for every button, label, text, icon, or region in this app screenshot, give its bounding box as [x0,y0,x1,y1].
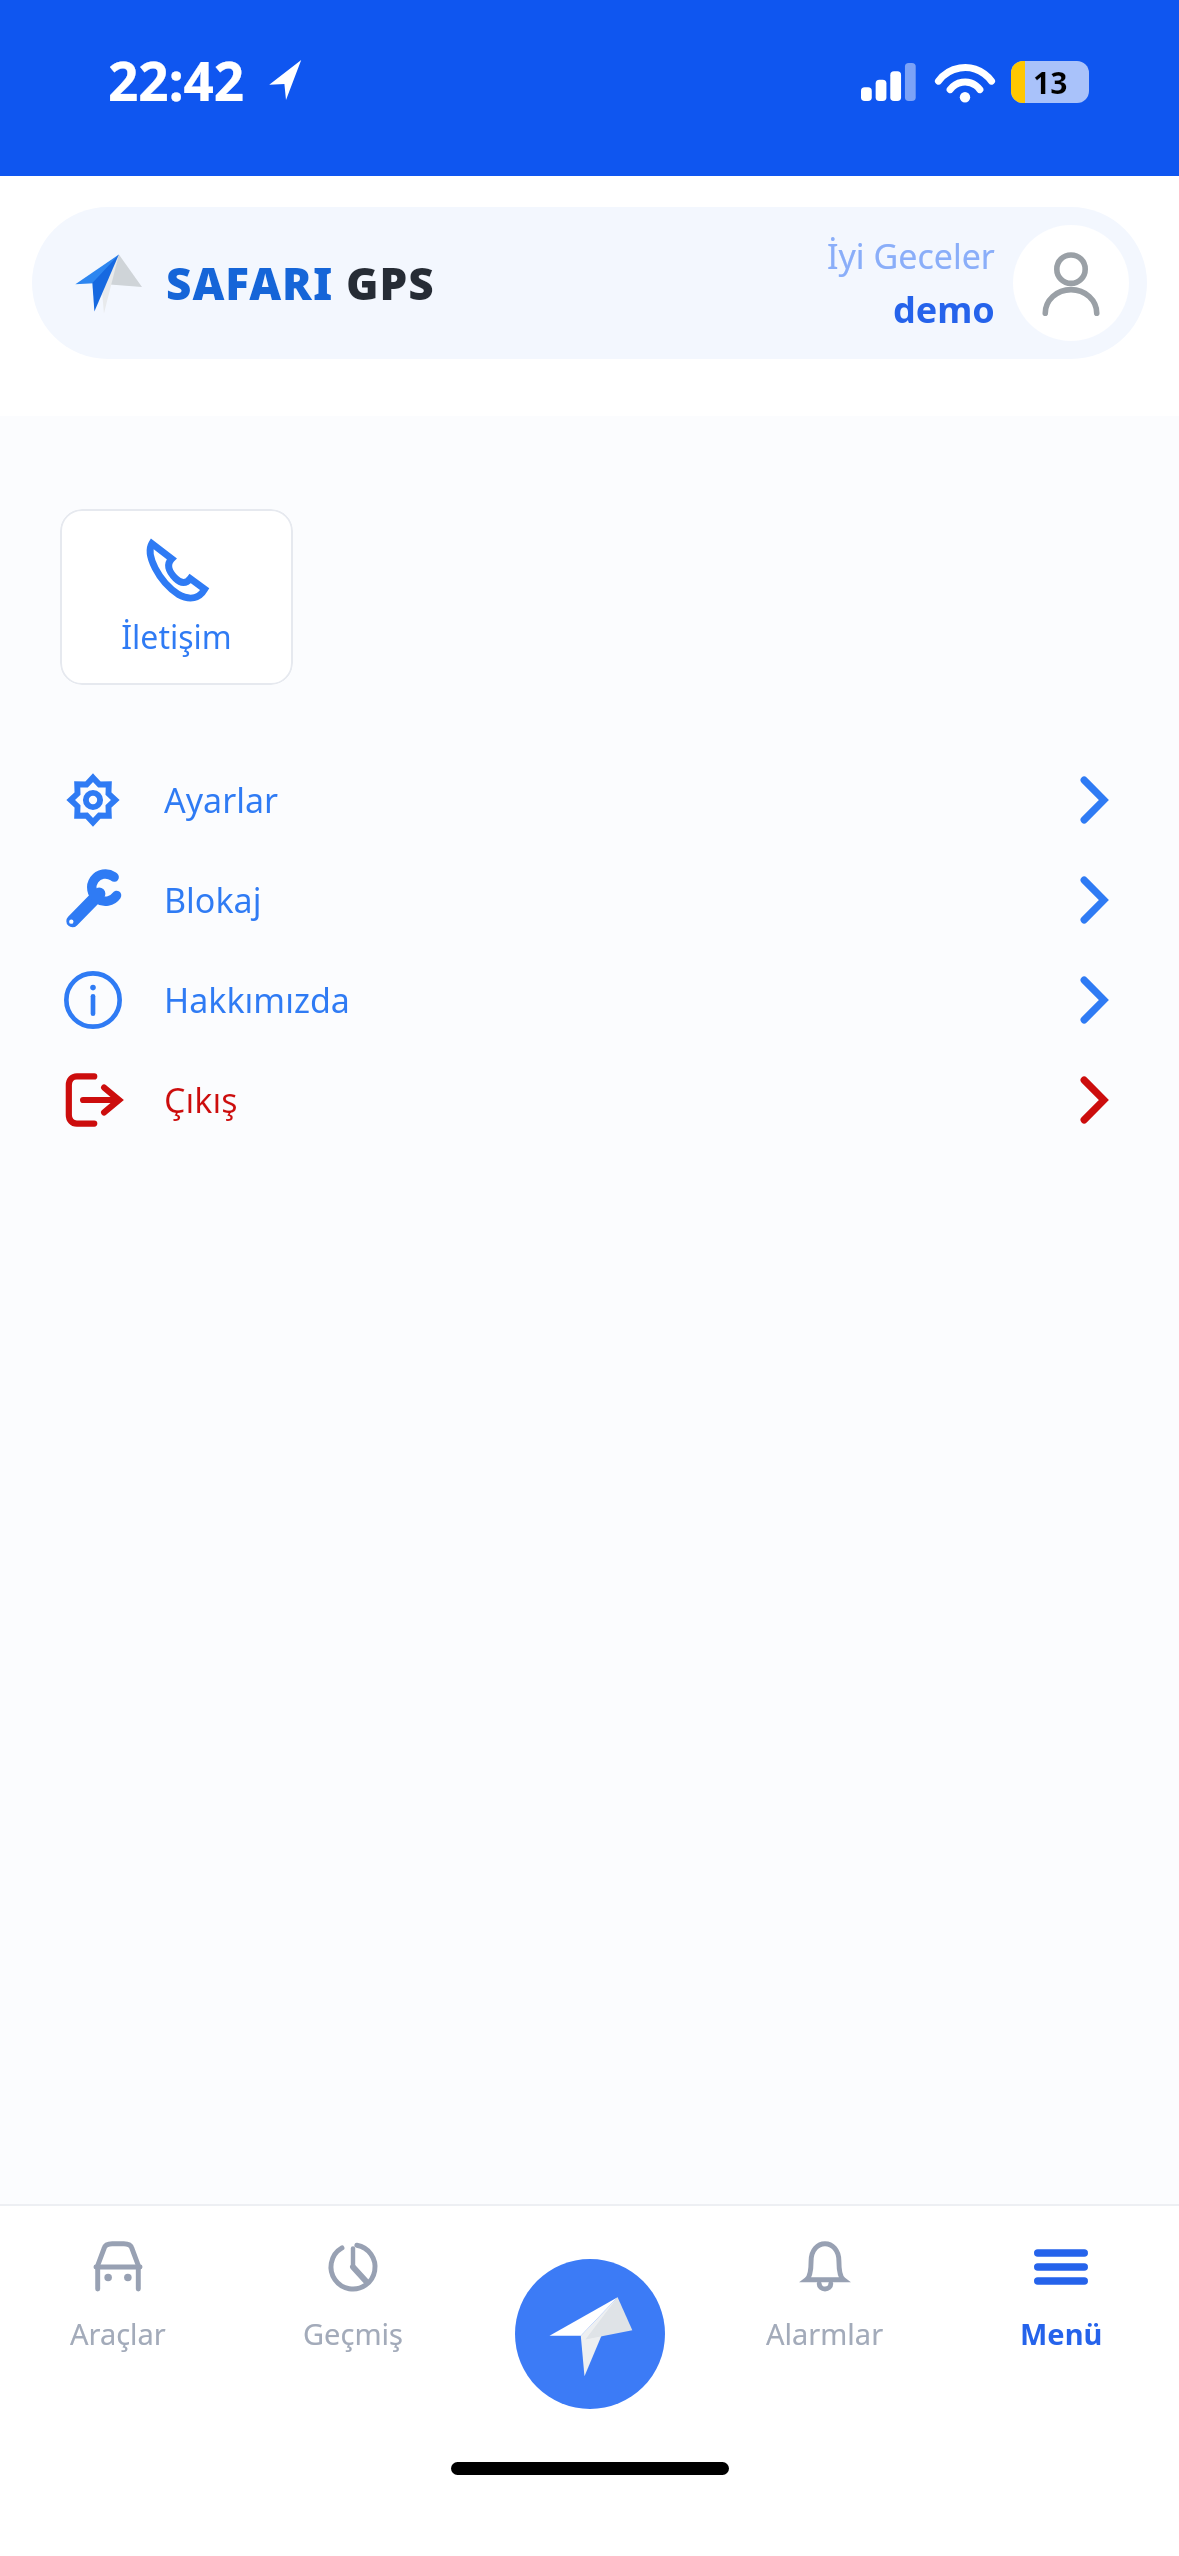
button[interactable]: Ayarlar [0,750,1179,850]
staticText: Çıkış [164,1077,238,1123]
button[interactable]: Profil [1013,225,1129,341]
button[interactable]: İletişim [60,509,293,685]
button[interactable]: Çıkış [0,1050,1179,1150]
staticText: Harita [547,2314,631,2353]
staticText: İyi Geceler [827,233,995,279]
staticText: İletişim [121,615,232,659]
button[interactable]: Alarmlar [707,2206,943,2380]
staticText: Alarmlar [766,2314,884,2353]
staticText: Araçlar [70,2314,166,2353]
staticText: Hakkımızda [164,977,350,1023]
staticText: Blokaj [164,877,262,923]
button[interactable]: Araçlar [0,2206,235,2380]
staticText: 22:42 [108,44,245,116]
staticText: GPS [346,253,435,313]
button[interactable]: SAFARI [32,207,1147,359]
staticText: 13 [1033,62,1068,103]
button[interactable]: Menü [943,2206,1179,2380]
button[interactable]: Geçmiş [235,2206,471,2380]
staticText: Ayarlar [164,777,279,823]
button[interactable]: Hakkımızda [0,950,1179,1050]
button[interactable]: Blokaj [0,850,1179,950]
button[interactable]: Harita [471,2206,707,2380]
staticText: Geçmiş [303,2314,403,2353]
button[interactable]: Harita [515,2259,665,2409]
staticText: demo [893,285,995,334]
staticText: SAFARI [166,253,334,313]
staticText: Menü [1020,2314,1103,2353]
